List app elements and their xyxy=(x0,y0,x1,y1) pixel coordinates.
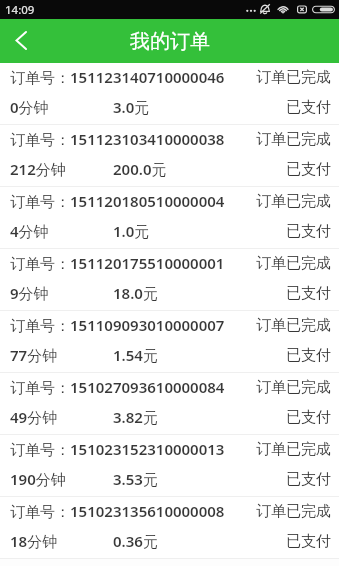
staticText: 订单已完成 xyxy=(256,130,331,149)
staticText: 订单已完成 xyxy=(256,440,331,459)
staticText: 212分钟 xyxy=(10,159,66,179)
staticText: 18分钟 xyxy=(10,531,58,551)
staticText: 订单号：151023152310000013 xyxy=(10,439,225,459)
button[interactable]: 订单号：151120180510000004 xyxy=(0,187,339,249)
staticText: 已支付 xyxy=(286,470,331,489)
staticText: 已支付 xyxy=(286,222,331,241)
staticText: 已支付 xyxy=(286,346,331,365)
staticText: 3.82元 xyxy=(113,407,158,427)
staticText: 订单号：151123103410000038 xyxy=(10,129,225,149)
staticText: 订单已完成 xyxy=(256,378,331,397)
staticText: 订单已完成 xyxy=(256,68,331,87)
staticText: 1.0元 xyxy=(113,221,150,241)
button[interactable]: 订单号：151123103410000038 xyxy=(0,125,339,187)
staticText: 订单号：151109093010000007 xyxy=(10,315,225,335)
staticText: 77分钟 xyxy=(10,345,58,365)
staticText: 4分钟 xyxy=(10,221,49,241)
staticText: 14:09 xyxy=(5,2,35,18)
button[interactable]: 订单号：151023152310000013 xyxy=(0,435,339,497)
staticText: 49分钟 xyxy=(10,407,58,427)
staticText: 已支付 xyxy=(286,160,331,179)
staticText: 0.36元 xyxy=(113,531,158,551)
button[interactable]: Back xyxy=(0,19,41,63)
staticText: 190分钟 xyxy=(10,469,66,489)
staticText: 订单号：151123140710000046 xyxy=(10,67,225,87)
staticText: 订单已完成 xyxy=(256,502,331,521)
staticText: 已支付 xyxy=(286,284,331,303)
staticText: 订单号：151027093610000084 xyxy=(10,377,225,397)
button[interactable]: 订单号：151123140710000046 xyxy=(0,63,339,125)
staticText: 已支付 xyxy=(286,98,331,117)
staticText: 订单号：151023135610000008 xyxy=(10,501,225,521)
staticText: 3.53元 xyxy=(113,469,158,489)
staticText: 1.54元 xyxy=(113,345,158,365)
staticText: 订单已完成 xyxy=(256,316,331,335)
button[interactable]: 订单号：151027093610000084 xyxy=(0,373,339,435)
staticText: 已支付 xyxy=(286,408,331,427)
staticText: 已支付 xyxy=(286,532,331,551)
staticText: 9分钟 xyxy=(10,283,49,303)
staticText: 0分钟 xyxy=(10,97,49,117)
staticText: 18.0元 xyxy=(113,283,158,303)
staticText: 订单号：151120175510000001 xyxy=(10,253,225,273)
staticText: 订单号：151120180510000004 xyxy=(10,191,225,211)
staticText: 订单已完成 xyxy=(256,192,331,211)
button[interactable]: 订单号：151120175510000001 xyxy=(0,249,339,311)
button[interactable]: 订单号：151023135610000008 xyxy=(0,497,339,559)
staticText: 我的订单 xyxy=(130,29,210,54)
button[interactable]: 订单号：151109093010000007 xyxy=(0,311,339,373)
staticText: 订单已完成 xyxy=(256,254,331,273)
staticText: 3.0元 xyxy=(113,97,150,117)
staticText: 200.0元 xyxy=(113,159,167,179)
